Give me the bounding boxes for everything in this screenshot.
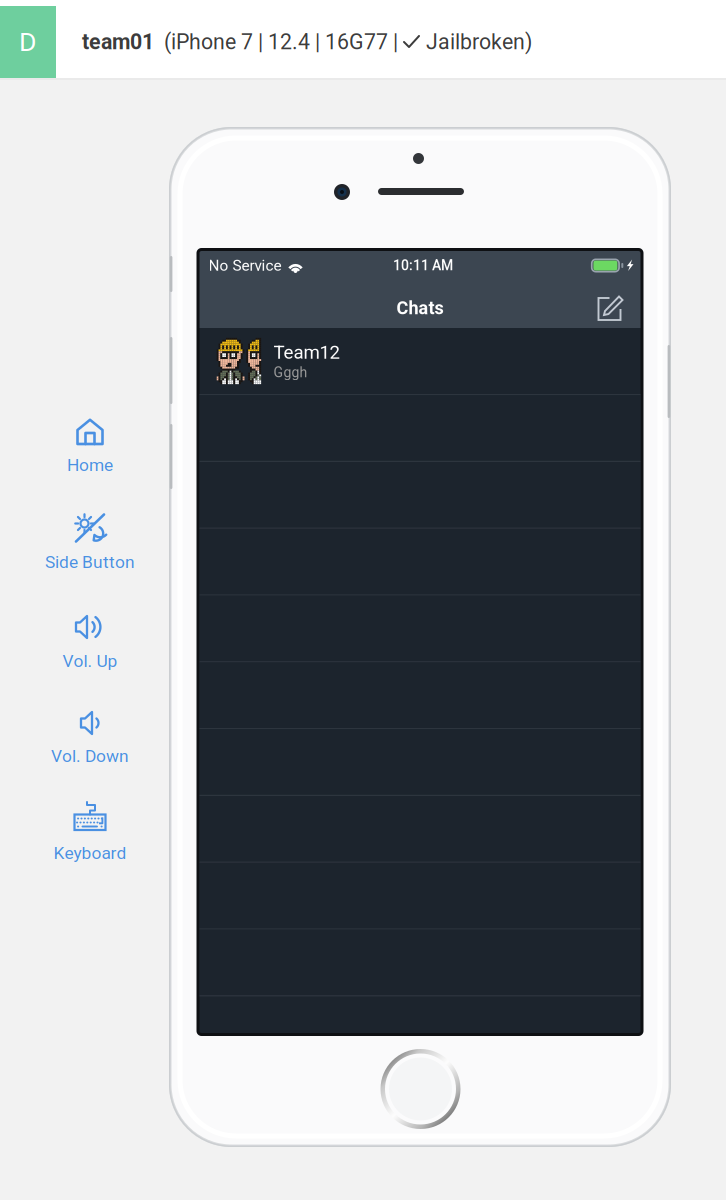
staticText: Chats xyxy=(396,297,443,319)
button[interactable]: Team12 xyxy=(199,328,640,394)
staticText: Keyboard xyxy=(53,843,126,863)
staticText: Gggh xyxy=(273,364,307,381)
staticText: Side Button xyxy=(45,552,135,572)
button[interactable]: Vol. Up xyxy=(0,0,180,1200)
staticText: No Service xyxy=(208,256,281,274)
button[interactable]: Home xyxy=(0,0,180,1200)
staticText: 10:11 AM xyxy=(393,257,453,274)
staticText: team01 xyxy=(82,29,154,54)
staticText: (iPhone 7 | 12.4 | 16G77 | xyxy=(154,29,403,54)
staticText: Home xyxy=(67,455,113,475)
button[interactable]: Device avatar xyxy=(0,6,56,78)
staticText: Vol. Up xyxy=(62,651,117,671)
button[interactable]: Compose xyxy=(593,292,640,324)
staticText: D xyxy=(19,26,37,58)
button[interactable]: Home button xyxy=(380,1049,460,1129)
staticText: Vol. Down xyxy=(51,746,129,766)
staticText: Jailbroken) xyxy=(421,29,532,54)
staticText: Team12 xyxy=(273,341,339,363)
button[interactable]: Keyboard xyxy=(0,0,180,1200)
button[interactable]: Side Button xyxy=(0,0,180,1200)
button[interactable]: Vol. Down xyxy=(0,0,180,1200)
